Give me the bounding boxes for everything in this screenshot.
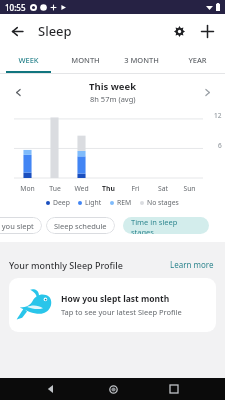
staticText: REM xyxy=(117,198,132,207)
staticText: This week xyxy=(89,80,137,93)
staticText: Deep xyxy=(53,198,70,207)
button[interactable]: Back xyxy=(3,17,31,45)
staticText: 12 xyxy=(214,111,222,120)
staticText: Wed xyxy=(74,184,89,193)
staticText: Fri xyxy=(131,184,140,193)
button[interactable]: Time in sleep stages xyxy=(123,217,209,234)
button[interactable]: YEAR xyxy=(169,47,225,73)
button[interactable]: Next week xyxy=(197,82,217,102)
staticText: Learn more xyxy=(170,259,214,270)
button[interactable]: Home xyxy=(102,378,124,400)
staticText: Mon xyxy=(20,184,35,193)
button[interactable]: Back xyxy=(40,378,62,400)
button[interactable]: Recents xyxy=(163,378,185,400)
button[interactable]: MONTH xyxy=(57,47,113,73)
button[interactable]: WEEK xyxy=(0,47,57,73)
staticText: Tap to see your latest Sleep Profile xyxy=(61,307,182,317)
button[interactable]: Learn more xyxy=(168,257,216,272)
staticText: No stages xyxy=(147,198,179,207)
staticText: Sleep schedule xyxy=(54,221,107,231)
button[interactable]: 3 MONTH xyxy=(113,47,169,73)
staticText: Time in sleep stages xyxy=(131,217,201,234)
staticText: WEEK xyxy=(18,55,39,65)
staticText: Sun xyxy=(183,184,196,193)
button[interactable]: Sleep schedule xyxy=(46,217,115,234)
staticText: How you slept last month xyxy=(61,293,170,305)
staticText: MONTH xyxy=(71,55,100,65)
staticText: 8h 57m (avg) xyxy=(90,94,136,104)
staticText: 6 xyxy=(218,141,222,150)
staticText: 10:55 xyxy=(5,2,26,13)
staticText: Sat xyxy=(158,184,168,193)
button[interactable]: How you slept last month xyxy=(9,278,216,332)
button[interactable]: Previous week xyxy=(8,82,28,102)
staticText: Sleep xyxy=(38,22,72,40)
staticText: Tue xyxy=(49,184,61,193)
button[interactable]: How you slept xyxy=(0,217,42,234)
staticText: Your monthly Sleep Profile xyxy=(9,259,123,271)
staticText: Thu xyxy=(102,184,115,193)
staticText: 3 MONTH xyxy=(124,55,159,65)
staticText: YEAR xyxy=(188,55,207,65)
button[interactable]: Settings xyxy=(165,17,193,45)
staticText: Light xyxy=(85,198,102,207)
staticText: How you slept xyxy=(0,221,34,231)
button[interactable]: Add xyxy=(193,17,221,45)
